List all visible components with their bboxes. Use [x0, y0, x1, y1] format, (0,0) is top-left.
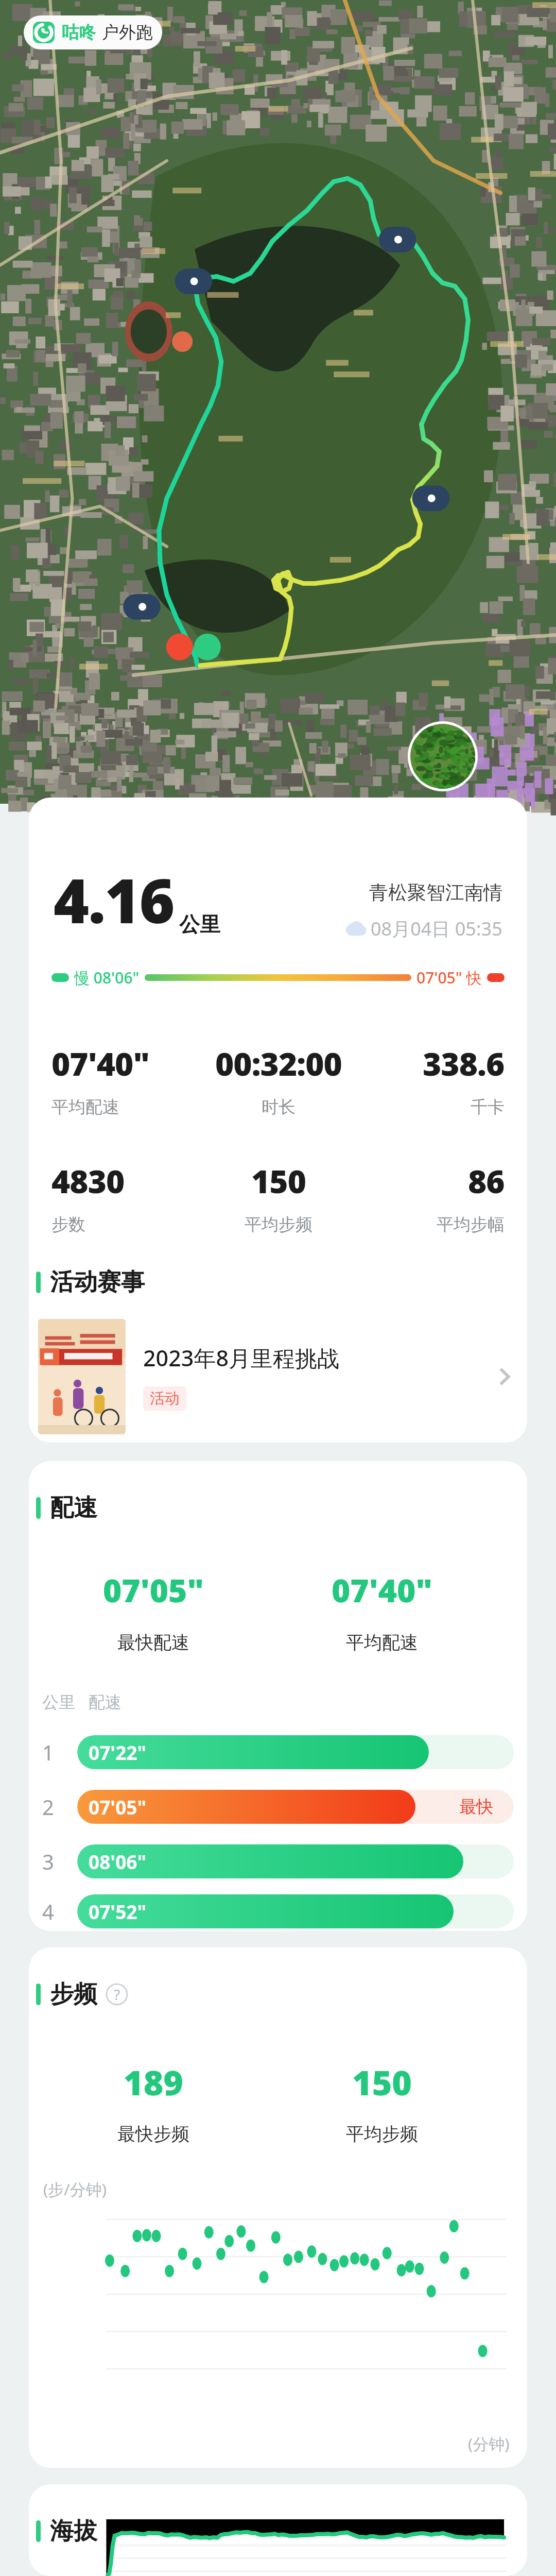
staticText: 4830 [51, 1159, 125, 1202]
staticText: 338.6 [423, 1042, 505, 1085]
staticText: 07'40" [332, 1568, 432, 1612]
staticText: ? [114, 1985, 120, 2004]
staticText: 平均配速 [346, 1631, 418, 1654]
staticText: 150 [251, 1159, 306, 1202]
staticText: 配速 [50, 1493, 97, 1523]
staticText: (步/分钟) [43, 2178, 107, 2200]
staticText: 配速 [89, 1692, 121, 1713]
staticText: 08月04日 05:35 [371, 916, 502, 941]
staticText: 3 [42, 1848, 54, 1875]
staticText: 07'22" [89, 1739, 147, 1765]
staticText: 4 [42, 1897, 54, 1925]
staticText: 07'52" [89, 1899, 147, 1924]
button[interactable]: 2023年8月里程挑战 [29, 1319, 527, 1434]
staticText: 07'05" [103, 1568, 204, 1612]
staticText: 最快 [459, 1796, 493, 1818]
staticText: 07'05" 快 [416, 967, 482, 988]
staticText: 4.16 [54, 858, 174, 941]
staticText: 慢 08'06" [74, 967, 140, 988]
staticText: 步频 [50, 1979, 97, 2009]
staticText: 00:32:00 [215, 1042, 342, 1085]
staticText: 千卡 [471, 1096, 505, 1118]
staticText: 活动赛事 [50, 1267, 145, 1297]
staticText: 07'40" [51, 1042, 149, 1085]
staticText: (分钟) [468, 2433, 510, 2454]
staticText: 公里 [42, 1692, 75, 1713]
staticText: 时长 [262, 1096, 296, 1118]
staticText: 青松聚智江南情 [369, 880, 502, 905]
staticText: 2023年8月里程挑战 [143, 1343, 339, 1373]
staticText: 150 [352, 2059, 412, 2105]
staticText: 平均步频 [346, 2123, 418, 2145]
staticText: 最快步频 [117, 2123, 189, 2145]
staticText: 86 [468, 1159, 505, 1202]
staticText: 海拔 [50, 2516, 97, 2546]
staticText: 活动 [150, 1389, 180, 1408]
staticText: 08'06" [89, 1849, 147, 1874]
staticText: 平均配速 [51, 1096, 119, 1118]
button[interactable]: 咕咚 [24, 15, 162, 49]
staticText: 咕咚 [62, 22, 96, 43]
staticText: 公里 [179, 911, 220, 937]
staticText: 07'05" [89, 1794, 147, 1820]
staticText: 最快配速 [117, 1631, 189, 1654]
staticText: 户外跑 [102, 22, 153, 43]
staticText: 1 [42, 1738, 54, 1766]
staticText: 平均步幅 [437, 1214, 505, 1235]
staticText: 步数 [51, 1214, 85, 1235]
staticText: 2 [42, 1793, 54, 1821]
staticText: 平均步频 [245, 1214, 312, 1235]
staticText: 189 [124, 2059, 184, 2105]
